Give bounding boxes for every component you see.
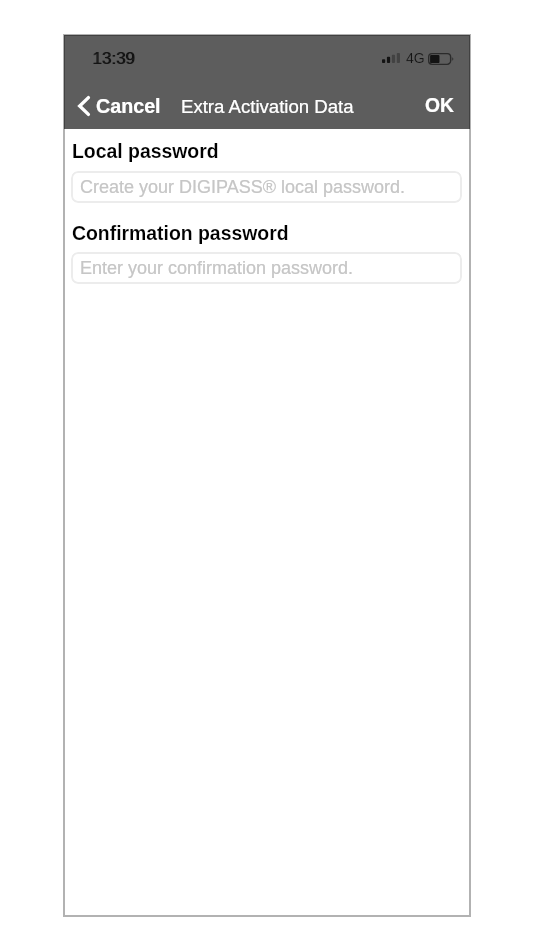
button[interactable]: Enter your confirmation password. (71, 252, 462, 284)
button[interactable]: Back (72, 85, 170, 127)
staticText: Cancel (96, 95, 161, 117)
staticText: Confirmation password (72, 222, 289, 244)
button[interactable]: OK (415, 85, 464, 128)
button[interactable]: Create your DIGIPASS® local password. (71, 171, 462, 203)
staticText: Enter your confirmation password. (80, 258, 354, 278)
staticText: Local password (72, 140, 219, 162)
staticText: 4G (406, 50, 425, 66)
staticText: Extra Activation Data (181, 96, 354, 117)
staticText: 13:39 (92, 49, 135, 68)
other: Back (78, 96, 90, 116)
staticText: OK (425, 95, 454, 117)
staticText: Create your DIGIPASS® local password. (80, 177, 406, 197)
staticText: 13:39 (93, 49, 136, 68)
